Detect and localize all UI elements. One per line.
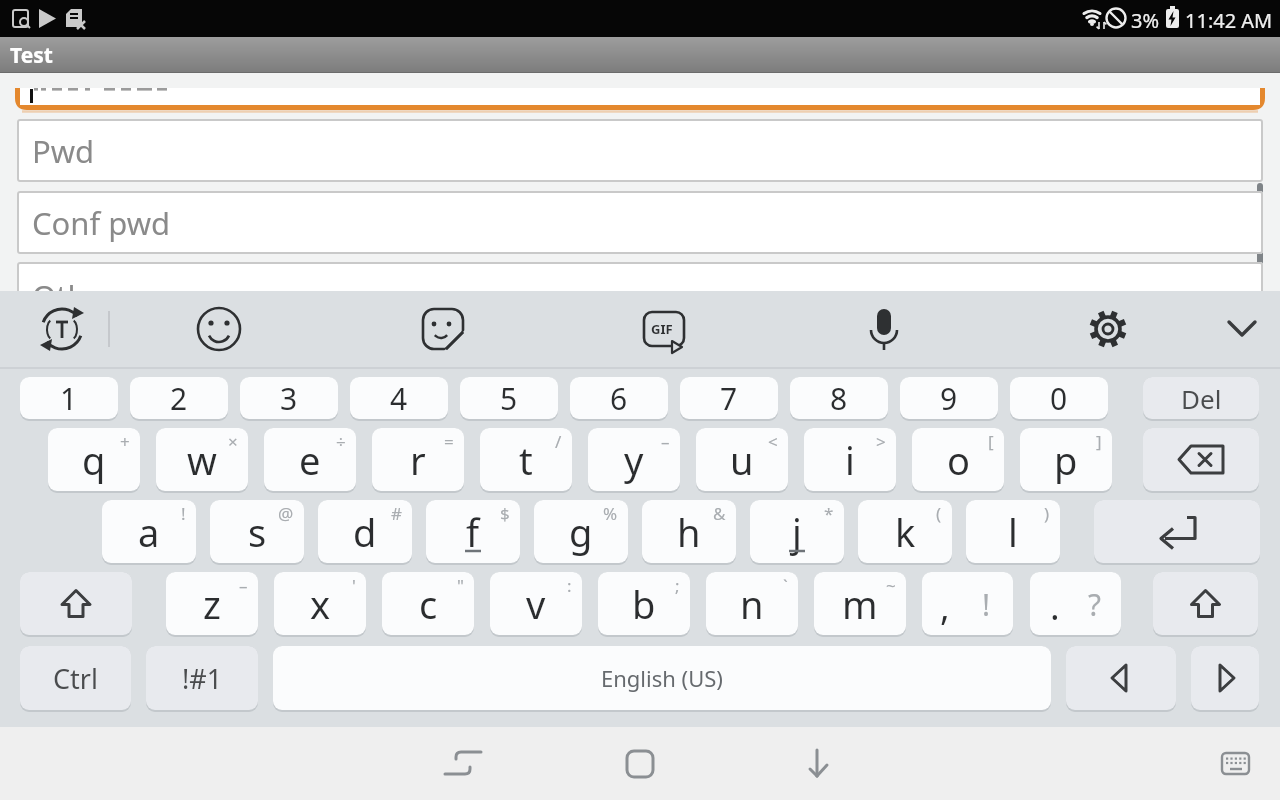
staticText: 5: [500, 378, 518, 419]
staticText: ': [352, 574, 356, 597]
button[interactable]: Ctrl: [20, 646, 131, 710]
button[interactable]: 2: [130, 377, 228, 419]
staticText: –: [239, 574, 248, 597]
staticText: u: [730, 434, 754, 486]
staticText: ×: [228, 430, 238, 453]
button[interactable]: Del: [1143, 377, 1259, 419]
button[interactable]: [20, 572, 132, 635]
button[interactable]: m: [814, 572, 906, 635]
staticText: :: [567, 574, 572, 597]
button[interactable]: q: [48, 428, 140, 491]
button[interactable]: c: [382, 572, 474, 635]
staticText: s: [248, 506, 267, 558]
staticText: i: [845, 434, 855, 486]
staticText: Pwd: [32, 130, 95, 172]
button[interactable]: w: [156, 428, 248, 491]
staticText: !: [982, 584, 991, 625]
button[interactable]: h: [642, 500, 736, 563]
button[interactable]: [1094, 500, 1260, 563]
button[interactable]: 3: [240, 377, 338, 419]
button[interactable]: f: [426, 500, 520, 563]
staticText: n: [740, 578, 764, 630]
button[interactable]: y: [588, 428, 680, 491]
staticText: `: [783, 574, 788, 597]
button[interactable]: 7: [680, 377, 778, 419]
staticText: ÷: [336, 430, 346, 453]
button[interactable]: a: [102, 500, 196, 563]
button[interactable]: [1030, 572, 1121, 635]
button[interactable]: u: [696, 428, 788, 491]
staticText: b: [632, 578, 656, 630]
staticText: Ctrl: [53, 660, 98, 697]
staticText: p: [1054, 434, 1078, 486]
staticText: z: [203, 578, 221, 630]
button[interactable]: Conf pwd: [17, 191, 1263, 254]
staticText: 3%: [1131, 7, 1160, 34]
button[interactable]: Other: [17, 262, 1263, 291]
staticText: ?: [1088, 584, 1102, 625]
button[interactable]: r: [372, 428, 464, 491]
button[interactable]: t: [480, 428, 572, 491]
staticText: f: [466, 506, 480, 558]
staticText: c: [419, 578, 438, 630]
button[interactable]: Pwd: [17, 119, 1263, 182]
staticText: 0: [1050, 378, 1068, 419]
staticText: 2: [170, 378, 188, 419]
button[interactable]: x: [274, 572, 366, 635]
staticText: o: [947, 434, 970, 486]
staticText: $: [500, 502, 510, 525]
staticText: ,: [940, 582, 950, 631]
button[interactable]: [1209, 741, 1261, 785]
button[interactable]: s: [210, 500, 304, 563]
button[interactable]: n: [706, 572, 798, 635]
button[interactable]: l: [966, 500, 1060, 563]
staticText: 4: [390, 378, 408, 419]
button[interactable]: 8: [790, 377, 888, 419]
button[interactable]: [1191, 646, 1259, 710]
staticText: 8: [830, 378, 848, 419]
staticText: x: [310, 578, 331, 630]
button[interactable]: [614, 737, 666, 789]
staticText: h: [677, 506, 701, 558]
staticText: !: [181, 502, 186, 525]
staticText: Test: [10, 41, 53, 70]
button[interactable]: 0: [1010, 377, 1108, 419]
staticText: k: [895, 506, 916, 558]
button[interactable]: e: [264, 428, 356, 491]
button[interactable]: 6: [570, 377, 668, 419]
button[interactable]: !#1: [146, 646, 258, 710]
button[interactable]: p: [1020, 428, 1112, 491]
staticText: ;: [675, 574, 680, 597]
staticText: e: [299, 434, 321, 486]
staticText: –: [661, 430, 670, 453]
button[interactable]: 5: [460, 377, 558, 419]
staticText: *: [824, 502, 834, 525]
button[interactable]: [1153, 572, 1258, 635]
button[interactable]: [922, 572, 1013, 635]
staticText: +: [120, 430, 130, 453]
staticText: [: [988, 430, 994, 453]
button[interactable]: i: [804, 428, 896, 491]
staticText: @: [278, 502, 294, 525]
button[interactable]: b: [598, 572, 690, 635]
staticText: %: [603, 502, 618, 525]
staticText: ]: [1096, 430, 1102, 453]
button[interactable]: o: [912, 428, 1004, 491]
button[interactable]: 9: [900, 377, 998, 419]
button[interactable]: [1143, 428, 1259, 491]
staticText: (: [936, 502, 942, 525]
button[interactable]: k: [858, 500, 952, 563]
button[interactable]: [1066, 646, 1176, 710]
button[interactable]: 1: [20, 377, 118, 419]
button[interactable]: 4: [350, 377, 448, 419]
staticText: w: [187, 434, 217, 486]
button[interactable]: j: [750, 500, 844, 563]
button[interactable]: [437, 737, 489, 789]
staticText: #: [391, 502, 402, 525]
button[interactable]: z: [166, 572, 258, 635]
button[interactable]: g: [534, 500, 628, 563]
button[interactable]: v: [490, 572, 582, 635]
button[interactable]: d: [318, 500, 412, 563]
button[interactable]: [791, 737, 843, 789]
button[interactable]: English (US): [273, 646, 1051, 710]
